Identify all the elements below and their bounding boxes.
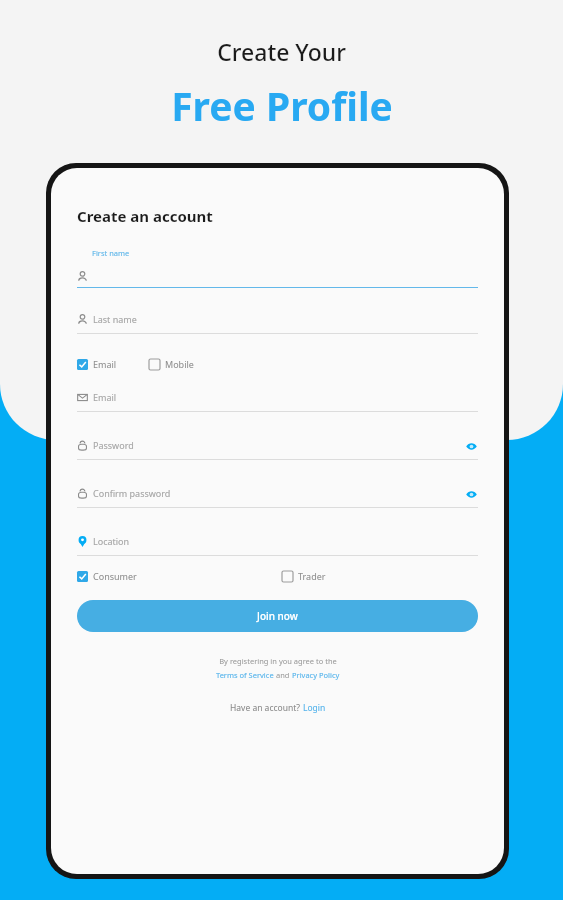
button[interactable]: Login	[303, 702, 326, 714]
staticText: Privacy Policy	[292, 670, 340, 680]
button[interactable]: Join now	[77, 600, 478, 632]
staticText: Free Profile	[171, 79, 393, 132]
staticText: Password	[93, 439, 134, 451]
button[interactable]: Password	[77, 438, 478, 460]
button[interactable]: Show password	[464, 487, 478, 501]
button[interactable]: Trader	[282, 570, 326, 582]
button[interactable]: Show password	[464, 439, 478, 453]
button[interactable]: Mobile	[149, 358, 194, 370]
button[interactable]: Email	[77, 358, 117, 370]
staticText: Terms of Service	[216, 670, 274, 680]
staticText: Have an account?	[230, 702, 303, 714]
button[interactable]: Privacy Policy	[292, 670, 340, 680]
button[interactable]: First name	[77, 248, 478, 288]
staticText: Login	[303, 702, 326, 714]
staticText: Consumer	[93, 570, 137, 582]
staticText: Email	[93, 358, 117, 370]
staticText: Create Your	[217, 36, 346, 67]
staticText: By registering in you agree to the	[219, 656, 337, 666]
staticText: Mobile	[165, 358, 194, 370]
staticText: Location	[93, 535, 130, 547]
staticText: Create an account	[77, 206, 213, 226]
button[interactable]: Location	[77, 534, 478, 556]
staticText: Trader	[298, 570, 326, 582]
staticText: Confirm password	[93, 487, 171, 499]
button[interactable]: Terms of Service	[216, 670, 274, 680]
staticText: and	[274, 670, 292, 680]
button[interactable]: Confirm password	[77, 486, 478, 508]
staticText: Join now	[257, 609, 298, 623]
button[interactable]: Consumer	[77, 570, 137, 582]
staticText: Email	[93, 391, 117, 403]
staticText: First name	[92, 248, 130, 258]
staticText: Last name	[93, 313, 137, 325]
button[interactable]: Last name	[77, 312, 478, 334]
button[interactable]: Email	[77, 390, 478, 412]
